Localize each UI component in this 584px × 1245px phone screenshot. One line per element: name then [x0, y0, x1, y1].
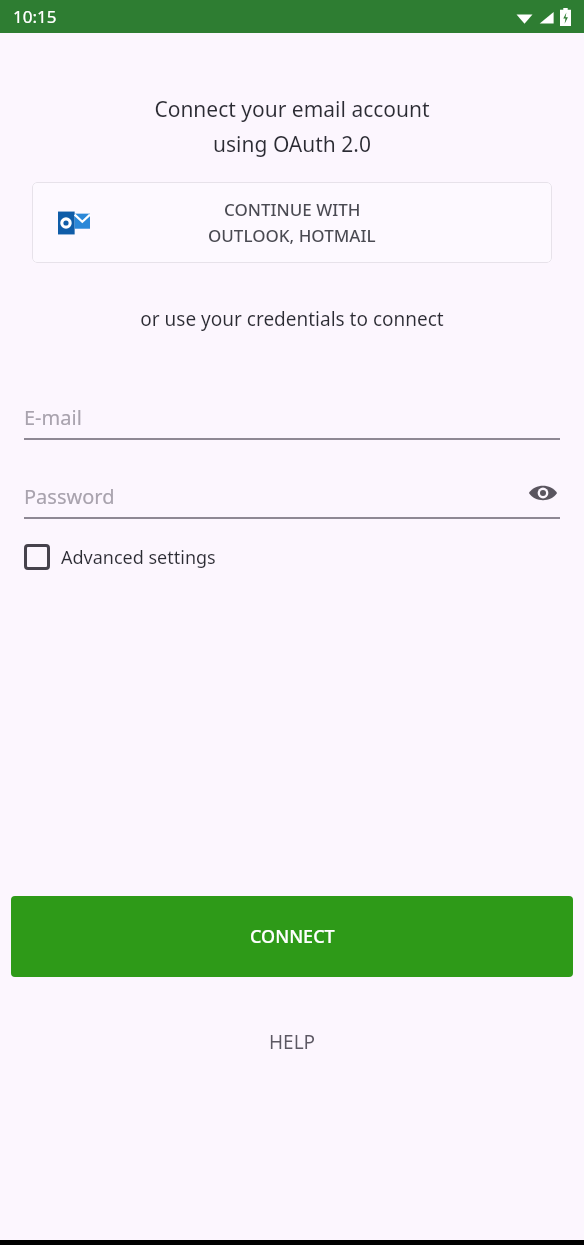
button[interactable]: CONNECT — [11, 896, 573, 977]
button[interactable]: E-mail — [24, 394, 560, 440]
staticText: HELP — [269, 1029, 316, 1055]
staticText: CONTINUE WITH — [224, 198, 361, 221]
staticText: OUTLOOK, HOTMAIL — [208, 224, 376, 247]
button[interactable]: Show password — [526, 476, 560, 510]
staticText: 10:15 — [13, 5, 57, 28]
button[interactable]: Password — [24, 473, 560, 519]
staticText: E-mail — [24, 404, 82, 431]
button[interactable]: Advanced settings — [24, 540, 226, 574]
button[interactable]: CONTINUE WITH — [32, 182, 552, 263]
staticText: using OAuth 2.0 — [0, 130, 584, 159]
staticText: Advanced settings — [61, 545, 216, 570]
staticText: or use your credentials to connect — [0, 306, 584, 332]
staticText: CONNECT — [250, 924, 335, 949]
staticText: Connect your email account — [0, 95, 584, 124]
button[interactable]: HELP — [243, 1021, 342, 1063]
staticText: Password — [24, 483, 115, 510]
